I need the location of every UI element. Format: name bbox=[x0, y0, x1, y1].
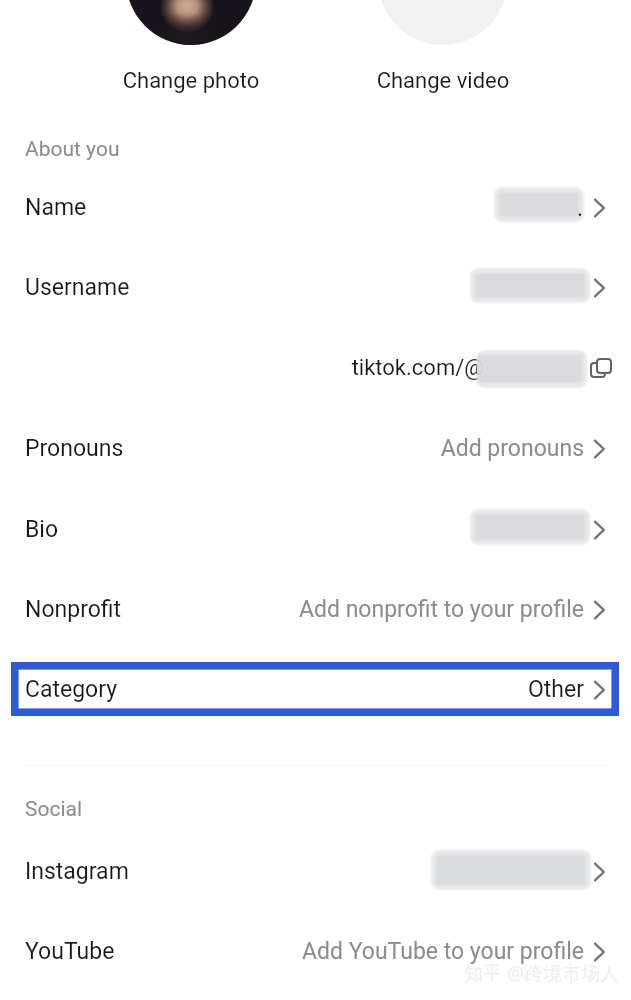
staticText: Change photo bbox=[110, 68, 272, 94]
staticText: Social bbox=[25, 797, 83, 822]
button[interactable]: Change video bbox=[362, 58, 524, 96]
staticText: Category bbox=[25, 676, 118, 703]
staticText: . bbox=[577, 195, 584, 222]
button[interactable]: Nonprofit bbox=[0, 576, 631, 640]
staticText: Change video bbox=[362, 68, 524, 94]
staticText: Add pronouns bbox=[0, 435, 584, 462]
staticText: 知乎 @跨境市场人 bbox=[464, 960, 620, 986]
staticText: About you bbox=[25, 137, 120, 162]
button[interactable]: tiktok.com/@ bbox=[0, 340, 631, 404]
staticText: Bio bbox=[25, 516, 59, 543]
button[interactable]: Username bbox=[0, 254, 631, 318]
button[interactable]: Change photo bbox=[110, 58, 272, 96]
button[interactable]: YouTube bbox=[0, 918, 631, 982]
button[interactable]: Bio bbox=[0, 496, 631, 560]
button[interactable]: Pronouns bbox=[0, 415, 631, 479]
staticText: Add nonprofit to your profile bbox=[0, 596, 584, 623]
staticText: tiktok.com/@ bbox=[0, 355, 484, 381]
staticText: Add YouTube to your profile bbox=[0, 938, 584, 965]
staticText: Other bbox=[0, 676, 584, 703]
button[interactable]: Change profile video bbox=[378, 0, 508, 45]
staticText: Instagram bbox=[25, 858, 129, 885]
staticText: Name bbox=[25, 194, 87, 221]
button[interactable]: Category bbox=[0, 656, 631, 720]
staticText: YouTube bbox=[25, 938, 115, 965]
staticText: Nonprofit bbox=[25, 596, 122, 623]
staticText: Username bbox=[25, 274, 130, 301]
staticText: Pronouns bbox=[25, 435, 124, 462]
button[interactable]: Name bbox=[0, 174, 631, 238]
button[interactable]: Copy profile link bbox=[589, 356, 615, 382]
button[interactable]: Instagram bbox=[0, 838, 631, 902]
button[interactable]: Change profile photo bbox=[126, 0, 256, 45]
